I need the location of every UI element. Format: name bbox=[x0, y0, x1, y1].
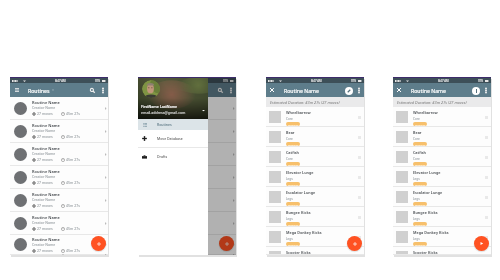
staticText: Routine Name bbox=[32, 215, 60, 220]
staticText: Creator Name bbox=[160, 151, 184, 156]
staticText: 27 moves bbox=[37, 203, 53, 208]
button[interactable]: Open navigation drawer bbox=[138, 83, 151, 97]
staticText: Core bbox=[413, 157, 420, 161]
button[interactable]: Elevator Lunge bbox=[266, 167, 364, 187]
button[interactable]: Routine Name bbox=[10, 212, 108, 235]
button[interactable]: Add routine bbox=[219, 236, 234, 251]
staticText: Legs bbox=[286, 237, 293, 241]
button[interactable]: Scooter Kicks bbox=[266, 247, 364, 255]
staticText: Beginner bbox=[415, 143, 426, 146]
staticText: 45m 27s bbox=[66, 134, 80, 139]
button[interactable]: Elevator Lunge bbox=[393, 167, 491, 187]
button[interactable]: Wheelbarrow bbox=[266, 107, 364, 127]
button[interactable]: Search bbox=[87, 83, 98, 97]
button[interactable]: Routine Name bbox=[138, 97, 236, 120]
staticText: Beginner bbox=[288, 183, 299, 186]
staticText: Mega Donkey Kicks bbox=[413, 230, 449, 235]
staticText: Beginner bbox=[288, 223, 299, 226]
staticText: Legs bbox=[413, 197, 420, 201]
button[interactable]: Drafts bbox=[138, 148, 208, 164]
button[interactable]: Close bbox=[393, 83, 405, 97]
button[interactable]: Routine Name bbox=[138, 212, 236, 235]
staticText: Legs bbox=[413, 217, 420, 221]
button[interactable]: Scooter Kicks bbox=[393, 247, 491, 255]
staticText: Creator Name bbox=[160, 128, 184, 133]
button[interactable]: Profile photo bbox=[142, 80, 160, 98]
button[interactable]: Add routine bbox=[91, 236, 106, 251]
staticText: 45m 27s bbox=[66, 180, 80, 185]
staticText: 27 moves bbox=[37, 157, 53, 162]
button[interactable]: Routine Name bbox=[138, 120, 236, 143]
button[interactable]: Edit routine bbox=[343, 85, 354, 96]
button[interactable]: Routine Name bbox=[10, 235, 108, 255]
button[interactable]: More options bbox=[354, 83, 364, 97]
button[interactable]: Bear bbox=[393, 127, 491, 147]
staticText: Routines bbox=[156, 87, 178, 94]
staticText: Catfish bbox=[286, 150, 299, 155]
button[interactable]: More options bbox=[98, 83, 108, 97]
button[interactable]: Routine Name bbox=[138, 166, 236, 189]
button[interactable]: Open navigation drawer bbox=[10, 83, 23, 97]
staticText: 97% bbox=[478, 79, 484, 83]
staticText: Wheelbarrow bbox=[286, 110, 311, 115]
staticText: Creator Name bbox=[32, 128, 56, 133]
staticText: 45m 27s bbox=[66, 111, 80, 116]
button[interactable]: Play routine bbox=[470, 85, 481, 96]
staticText: Routine Name bbox=[32, 169, 60, 174]
staticText: Wheelbarrow bbox=[413, 110, 438, 115]
button[interactable]: Routine Name bbox=[10, 97, 108, 120]
staticText: Creator Name bbox=[32, 151, 56, 156]
button[interactable]: Search bbox=[215, 83, 226, 97]
staticText: Escalator Lunge bbox=[413, 190, 443, 195]
staticText: Routine Name bbox=[32, 123, 60, 128]
staticText: Legs bbox=[286, 197, 293, 201]
button[interactable]: Catfish bbox=[393, 147, 491, 167]
staticText: 97% bbox=[351, 79, 357, 83]
button[interactable]: Add move bbox=[347, 236, 362, 251]
button[interactable]: Routine Name bbox=[10, 166, 108, 189]
button[interactable]: Switch account bbox=[201, 108, 206, 113]
button[interactable]: Mega Donkey Kicks bbox=[393, 227, 491, 247]
button[interactable]: Routine Name bbox=[138, 143, 236, 166]
button[interactable]: Escalator Lunge bbox=[393, 187, 491, 207]
staticText: 45m 27s bbox=[66, 248, 80, 253]
button[interactable]: Catfish bbox=[266, 147, 364, 167]
button[interactable]: Routine Name bbox=[138, 189, 236, 212]
staticText: Core bbox=[413, 137, 420, 141]
staticText: Core bbox=[413, 117, 420, 121]
staticText: FirstName LastName bbox=[141, 104, 178, 109]
staticText: 8:47 AM bbox=[311, 79, 322, 83]
staticText: Core bbox=[286, 117, 293, 121]
staticText: Estimated Duration: 43m 27s (27 moves) bbox=[397, 100, 467, 105]
button[interactable]: More options bbox=[481, 83, 491, 97]
staticText: Catfish bbox=[413, 150, 426, 155]
staticText: Legs bbox=[286, 177, 293, 181]
staticText: Beginner bbox=[415, 123, 426, 126]
button[interactable]: Routines bbox=[138, 119, 208, 130]
staticText: Legs bbox=[413, 237, 420, 241]
button[interactable]: Routine Name bbox=[10, 189, 108, 212]
button[interactable]: Bear bbox=[266, 127, 364, 147]
staticText: 27 moves bbox=[165, 111, 181, 116]
button[interactable]: Routine Name bbox=[10, 120, 108, 143]
button[interactable]: Start routine bbox=[474, 236, 489, 251]
button[interactable]: Routine Name bbox=[10, 143, 108, 166]
button[interactable]: Wheelbarrow bbox=[393, 107, 491, 127]
button[interactable]: Routine Name bbox=[138, 235, 236, 255]
staticText: 27 moves bbox=[37, 134, 53, 139]
button[interactable]: Close bbox=[266, 83, 278, 97]
button[interactable]: Move Database bbox=[138, 130, 208, 147]
button[interactable]: Bungee Kicks bbox=[266, 207, 364, 227]
button[interactable]: Escalator Lunge bbox=[266, 187, 364, 207]
staticText: 45m 27s bbox=[194, 111, 208, 116]
staticText: 27 moves bbox=[165, 134, 181, 139]
staticText: Creator Name bbox=[160, 105, 184, 110]
staticText: Creator Name bbox=[32, 242, 56, 247]
button[interactable]: Bungee Kicks bbox=[393, 207, 491, 227]
button[interactable]: Mega Donkey Kicks bbox=[266, 227, 364, 247]
button[interactable]: More options bbox=[226, 83, 236, 97]
